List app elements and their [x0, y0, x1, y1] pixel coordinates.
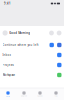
staticText: Workspace [2, 73, 15, 77]
button[interactable]: Search [49, 31, 54, 35]
button[interactable]: Inbox [0, 50, 64, 60]
button[interactable]: Projects [0, 60, 64, 70]
staticText: 9:41 [4, 2, 11, 5]
staticText: Inbox [2, 53, 10, 57]
staticText: You [54, 95, 57, 97]
button[interactable]: Continue where you left [0, 40, 64, 50]
button[interactable]: Home [0, 88, 16, 100]
staticText: Home [6, 95, 10, 97]
button[interactable]: Saved [32, 88, 48, 100]
button[interactable]: Workspace [0, 70, 64, 80]
button[interactable]: You [48, 88, 64, 100]
button[interactable]: Search [16, 88, 32, 100]
staticText: Good Morning [9, 31, 30, 35]
button[interactable]: Account [54, 31, 61, 35]
staticText: Continue where you left [2, 43, 38, 47]
staticText: Projects [2, 63, 13, 67]
